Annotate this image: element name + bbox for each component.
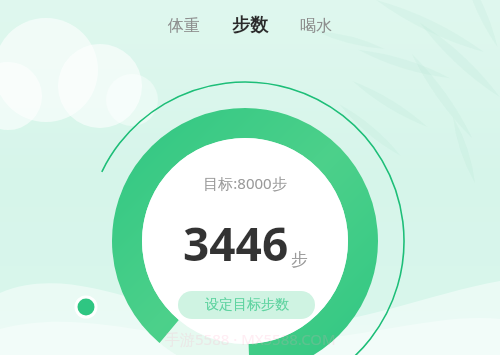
button[interactable]: 喝水	[286, 12, 346, 40]
staticText: 3446	[183, 212, 289, 275]
staticText: 手游5588 · MX5588.COM	[165, 329, 336, 349]
staticText: 体重	[168, 16, 200, 36]
button[interactable]: 设定目标步数	[178, 291, 315, 319]
staticText: 步数	[232, 14, 268, 37]
staticText: 设定目标步数	[205, 296, 289, 314]
button[interactable]: 步数	[214, 10, 286, 41]
staticText: 步	[291, 249, 308, 270]
staticText: 目标:8000步	[203, 173, 287, 193]
staticText: 喝水	[300, 16, 332, 36]
button[interactable]: 体重	[154, 12, 214, 40]
